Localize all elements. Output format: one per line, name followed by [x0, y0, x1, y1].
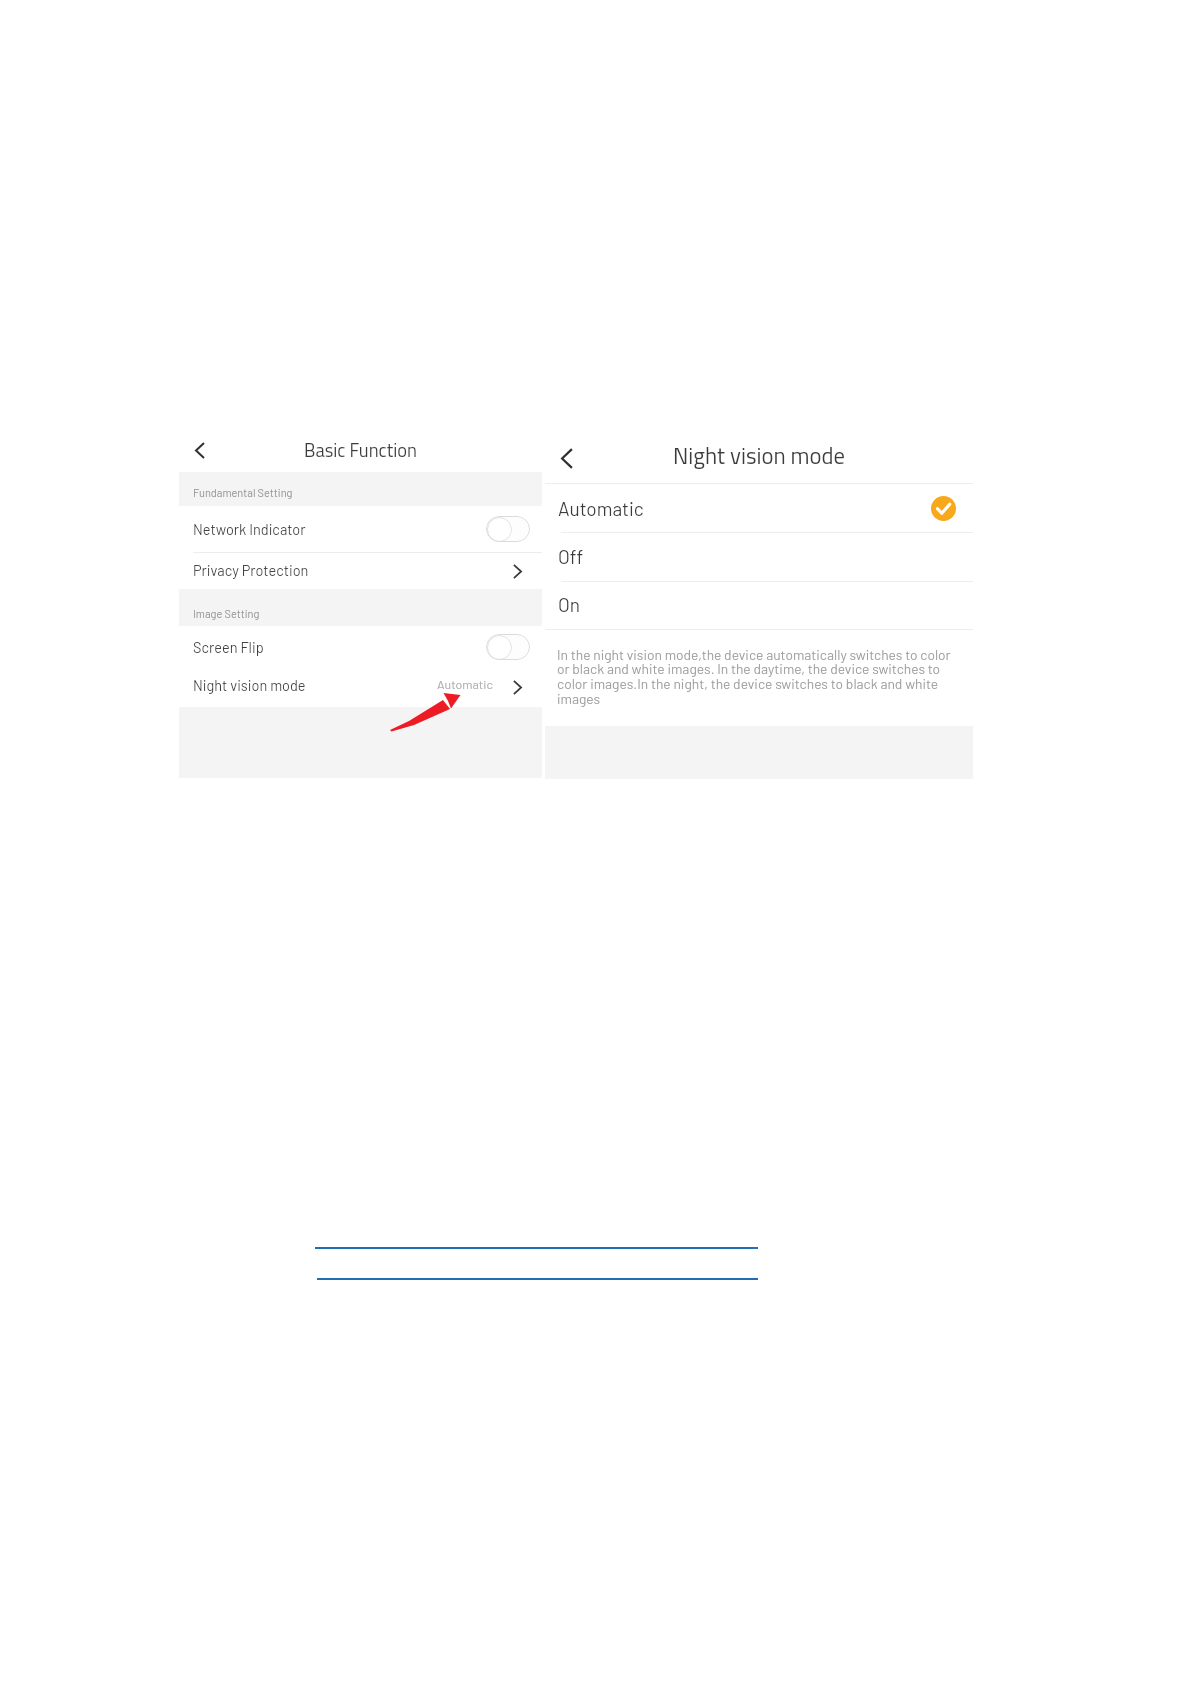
button[interactable]: Privacy Protection: [179, 553, 542, 589]
button[interactable]: Network Indicator: [179, 506, 542, 552]
staticText: Off: [558, 545, 584, 568]
button[interactable]: Night vision mode: [179, 667, 542, 707]
staticText: Fundamental Setting: [193, 486, 293, 499]
staticText: In the night vision mode,the device auto…: [557, 646, 954, 707]
staticText: Screen Flip: [193, 638, 264, 655]
button[interactable]: On: [545, 582, 973, 629]
staticText: Privacy Protection: [193, 561, 309, 578]
button[interactable]: Back: [179, 433, 217, 472]
staticText: Automatic: [558, 497, 644, 520]
button[interactable]: Screen Flip: [179, 626, 542, 667]
button[interactable]: Automatic: [545, 484, 973, 532]
staticText: Network Indicator: [193, 520, 306, 537]
staticText: Automatic: [437, 677, 493, 692]
button[interactable]: Off: [545, 533, 973, 581]
button[interactable]: Toggle: [486, 634, 530, 660]
staticText: Night vision mode: [193, 676, 306, 693]
staticText: On: [558, 593, 581, 616]
button[interactable]: Toggle: [486, 516, 530, 542]
staticText: Image Setting: [193, 607, 260, 620]
staticText: Night vision mode: [673, 438, 845, 473]
staticText: Basic Function: [304, 436, 417, 464]
button[interactable]: Back: [545, 437, 585, 483]
